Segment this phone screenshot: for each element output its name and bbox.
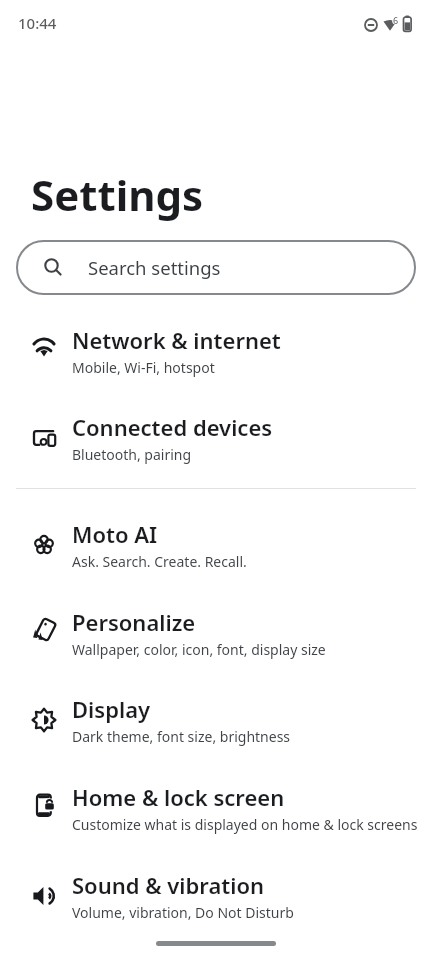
- staticText: Connected devices: [72, 412, 273, 442]
- staticText: 10:44: [18, 13, 57, 33]
- button[interactable]: Home & lock screen: [0, 764, 432, 852]
- staticText: Mobile, Wi-Fi, hotspot: [72, 358, 215, 377]
- button[interactable]: Moto AI: [0, 501, 432, 589]
- button[interactable]: Network & internet: [0, 307, 432, 395]
- button[interactable]: Personalize: [0, 589, 432, 677]
- staticText: Customize what is displayed on home & lo…: [72, 815, 418, 834]
- staticText: Home & lock screen: [72, 782, 285, 812]
- staticText: Dark theme, font size, brightness: [72, 727, 291, 746]
- staticText: Moto AI: [72, 519, 158, 549]
- staticText: Network & internet: [72, 325, 281, 355]
- button[interactable]: Connected devices: [0, 394, 432, 482]
- staticText: Sound & vibration: [72, 870, 265, 900]
- button[interactable]: Display: [0, 676, 432, 764]
- button[interactable]: Search settings: [16, 240, 416, 295]
- staticText: Settings: [31, 166, 204, 223]
- staticText: Volume, vibration, Do Not Disturb: [72, 903, 294, 922]
- staticText: 6: [393, 14, 399, 26]
- staticText: Display: [72, 694, 151, 724]
- staticText: Wallpaper, color, icon, font, display si…: [72, 640, 326, 659]
- staticText: Personalize: [72, 607, 196, 637]
- staticText: Bluetooth, pairing: [72, 445, 192, 464]
- button[interactable]: Sound & vibration: [0, 852, 432, 940]
- staticText: Ask. Search. Create. Recall.: [72, 552, 247, 571]
- staticText: Search settings: [88, 255, 221, 280]
